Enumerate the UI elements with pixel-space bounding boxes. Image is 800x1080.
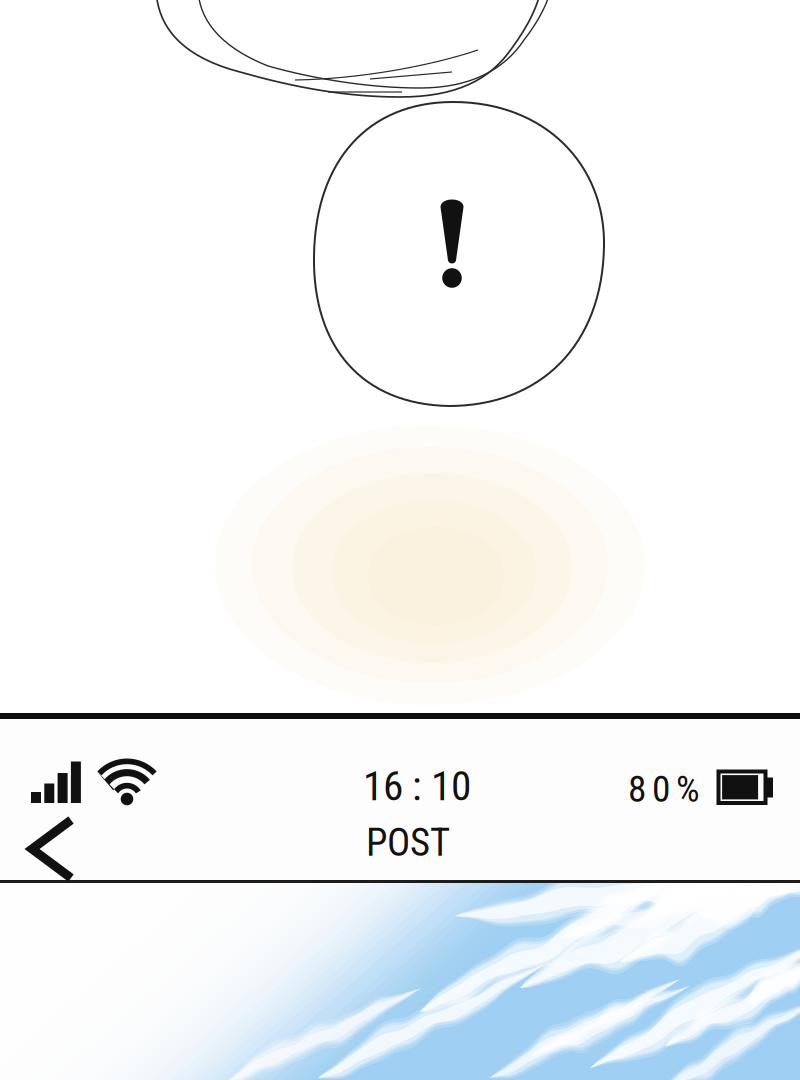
staticText: POST bbox=[366, 820, 450, 865]
button[interactable]: Cellular signal bbox=[0, 0, 800, 1080]
button[interactable]: Wi-Fi bbox=[0, 0, 800, 1080]
staticText: 8 0 % bbox=[628, 767, 700, 811]
button[interactable]: Back bbox=[0, 0, 800, 1080]
staticText: 16 : 10 bbox=[363, 762, 471, 810]
